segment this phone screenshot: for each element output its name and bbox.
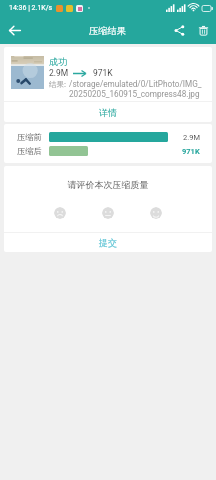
staticText: 971K: [93, 68, 113, 78]
button[interactable]: Back: [0, 16, 30, 44]
button[interactable]: Rating 0: [54, 207, 66, 219]
button[interactable]: 提交: [4, 233, 212, 252]
staticText: 成功: [49, 56, 67, 67]
staticText: 2.9M: [49, 68, 69, 78]
staticText: 压缩前: [17, 132, 42, 142]
button[interactable]: Rating 1: [102, 207, 114, 219]
staticText: 971K: [182, 147, 200, 156]
staticText: /storage/emulated/0/LitPhoto/IMG_2025020…: [69, 79, 205, 99]
button[interactable]: 详情: [4, 102, 212, 122]
staticText: 压缩后: [17, 146, 42, 156]
staticText: 请评价本次压缩质量: [4, 179, 212, 190]
staticText: 2.9M: [183, 133, 200, 142]
staticText: 结果:: [49, 79, 67, 89]
button[interactable]: Delete: [191, 18, 215, 42]
staticText: 压缩结果: [89, 25, 127, 37]
staticText: 提交: [99, 237, 117, 248]
button[interactable]: Share: [167, 18, 191, 42]
button[interactable]: Rating 2: [150, 207, 162, 219]
staticText: 详情: [99, 107, 117, 118]
staticText: 14:36 | 2.1K/s: [9, 4, 53, 12]
